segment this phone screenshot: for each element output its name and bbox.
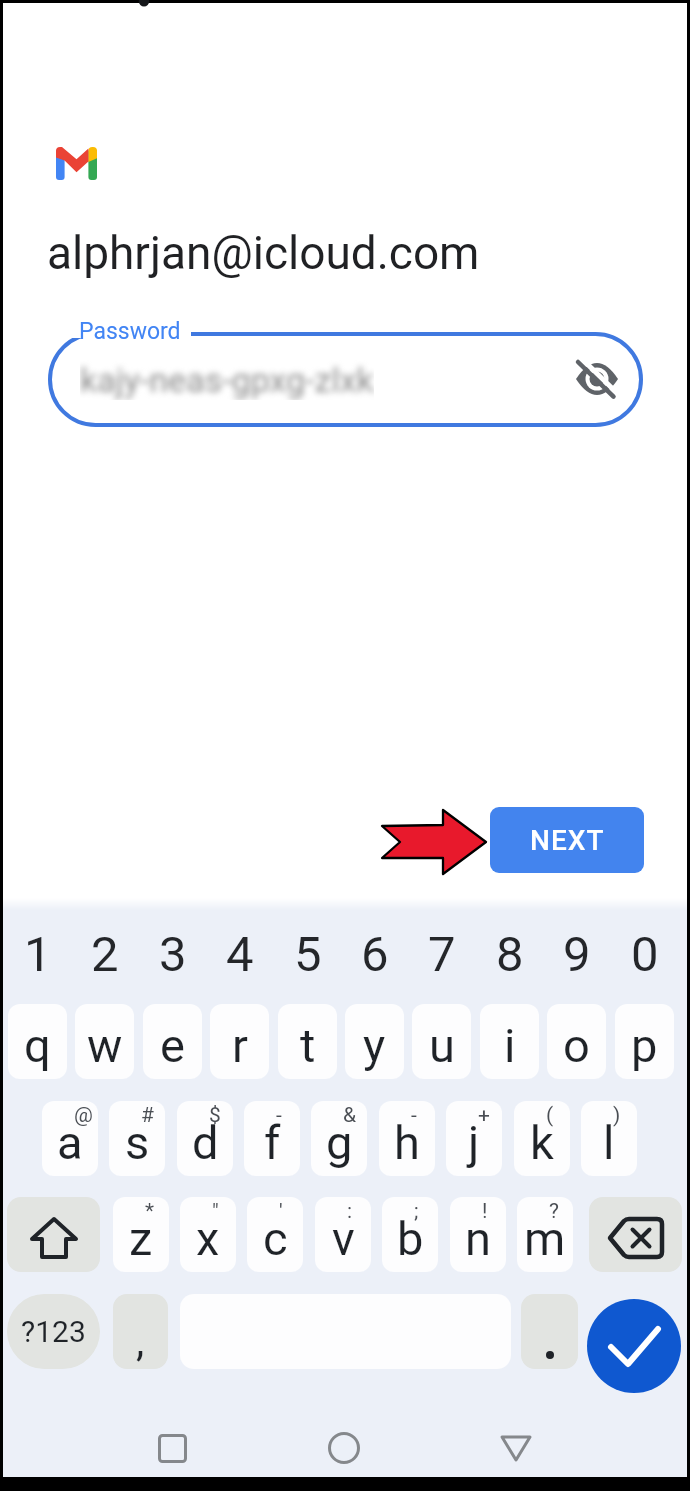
button[interactable]: 2 <box>75 917 134 991</box>
staticText: m <box>524 1211 566 1266</box>
button[interactable]: 7 <box>412 917 471 991</box>
button[interactable]: 8 <box>480 917 539 991</box>
button[interactable]: 6 <box>345 917 404 991</box>
button[interactable]: o <box>547 1004 606 1079</box>
button[interactable]: g <box>311 1101 367 1176</box>
staticText: + <box>478 1103 490 1128</box>
button[interactable] <box>521 1294 578 1369</box>
staticText: f <box>264 1115 281 1170</box>
staticText: 1 <box>24 926 52 983</box>
button[interactable] <box>587 1299 681 1393</box>
staticText: ( <box>546 1103 554 1128</box>
staticText: & <box>343 1103 357 1128</box>
staticText: j <box>468 1115 480 1170</box>
button[interactable]: n <box>450 1197 506 1272</box>
staticText: k <box>530 1115 554 1170</box>
button[interactable]: v <box>315 1197 371 1272</box>
button[interactable]: NEXT <box>490 807 644 873</box>
button[interactable] <box>316 1424 372 1472</box>
staticText: ' <box>279 1199 283 1224</box>
button[interactable]: d <box>177 1101 233 1176</box>
staticText: 0 <box>631 926 659 983</box>
staticText: 9 <box>563 926 591 983</box>
staticText: 8 <box>496 926 524 983</box>
staticText: h <box>394 1115 420 1170</box>
button[interactable]: e <box>143 1004 202 1079</box>
button[interactable]: b <box>382 1197 438 1272</box>
button[interactable]: z <box>113 1197 169 1272</box>
staticText: o <box>563 1018 590 1073</box>
staticText: , <box>136 1317 145 1366</box>
staticText: n <box>465 1211 491 1266</box>
button[interactable] <box>589 1197 682 1272</box>
staticText: i <box>504 1018 516 1073</box>
staticText: g <box>326 1115 353 1170</box>
staticText: c <box>263 1211 288 1266</box>
staticText: 6 <box>361 926 389 983</box>
staticText: l <box>603 1115 615 1170</box>
staticText: q <box>24 1018 51 1073</box>
staticText: a <box>57 1115 83 1170</box>
staticText: @ <box>74 1103 93 1128</box>
button[interactable] <box>144 1424 200 1472</box>
staticText: ; <box>414 1199 419 1224</box>
staticText: d <box>192 1115 219 1170</box>
button[interactable]: j <box>446 1101 502 1176</box>
button[interactable]: c <box>247 1197 303 1272</box>
staticText: r <box>232 1018 248 1073</box>
button[interactable]: u <box>412 1004 471 1079</box>
staticText: alphrjan@icloud.com <box>47 226 480 280</box>
button[interactable]: w <box>75 1004 134 1079</box>
button[interactable]: 1 <box>8 917 67 991</box>
staticText: e <box>160 1018 185 1073</box>
button[interactable]: k <box>514 1101 570 1176</box>
staticText: - <box>411 1103 417 1128</box>
button[interactable]: i <box>480 1004 539 1079</box>
button[interactable]: f <box>244 1101 300 1176</box>
button[interactable]: , <box>113 1294 168 1369</box>
staticText: x <box>196 1211 220 1266</box>
button[interactable]: t <box>278 1004 337 1079</box>
staticText: w <box>87 1018 123 1073</box>
staticText: Password <box>79 318 181 345</box>
staticText: 2 <box>91 926 119 983</box>
staticText: 4 <box>226 926 254 983</box>
button[interactable]: s <box>109 1101 165 1176</box>
staticText: $ <box>209 1103 221 1128</box>
staticText: p <box>631 1018 658 1073</box>
staticText: 7 <box>428 926 456 983</box>
button[interactable]: a <box>42 1101 98 1176</box>
staticText: : <box>347 1199 353 1224</box>
button[interactable]: 4 <box>210 917 269 991</box>
staticText: ! <box>482 1199 488 1224</box>
button[interactable] <box>48 332 643 427</box>
button[interactable]: m <box>517 1197 573 1272</box>
staticText: y <box>363 1018 386 1073</box>
button[interactable]: 3 <box>143 917 202 991</box>
button[interactable] <box>488 1424 544 1472</box>
staticText: 3 <box>159 926 187 983</box>
button[interactable]: ?123 <box>7 1294 100 1369</box>
button[interactable]: h <box>379 1101 435 1176</box>
button[interactable]: 5 <box>278 917 337 991</box>
staticText: t <box>300 1018 316 1073</box>
staticText: s <box>125 1115 150 1170</box>
button[interactable]: r <box>210 1004 269 1079</box>
staticText: * <box>145 1199 155 1224</box>
button[interactable] <box>7 1197 100 1272</box>
button[interactable]: 0 <box>615 917 674 991</box>
button[interactable]: x <box>180 1197 236 1272</box>
staticText: 5 <box>294 926 322 983</box>
staticText: ?123 <box>21 1314 86 1349</box>
button[interactable]: y <box>345 1004 404 1079</box>
button[interactable]: l <box>581 1101 637 1176</box>
staticText: u <box>429 1018 455 1073</box>
staticText: b <box>397 1211 424 1266</box>
staticText: ) <box>613 1103 621 1128</box>
button[interactable]: p <box>615 1004 674 1079</box>
button[interactable]: q <box>8 1004 67 1079</box>
button[interactable]: 9 <box>547 917 606 991</box>
staticText: NEXT <box>530 824 605 857</box>
staticText: # <box>141 1103 154 1128</box>
